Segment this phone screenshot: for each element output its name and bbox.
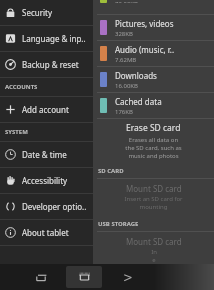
staticText: Mount SD card <box>126 236 182 247</box>
staticText: 16.00KB <box>115 82 138 90</box>
staticText: Date & time <box>22 149 67 160</box>
staticText: 328KB <box>115 30 133 38</box>
staticText: Insert an SD card for mounting <box>124 195 183 211</box>
button[interactable]: Date & time <box>0 142 93 167</box>
staticText: ACCOUNTS <box>5 83 38 91</box>
staticText: 7.62MB <box>115 56 137 64</box>
button[interactable]: Add account <box>0 97 93 122</box>
staticText: About tablet <box>22 227 69 238</box>
staticText: In e <box>151 248 157 264</box>
staticText: USB STORAGE <box>98 220 139 228</box>
button[interactable]: Recent apps <box>112 266 142 288</box>
button[interactable]: Accessibility <box>0 168 93 193</box>
staticText: 72.00KB <box>115 0 138 3</box>
staticText: Cached data <box>115 96 162 107</box>
button[interactable]: Security <box>0 0 93 25</box>
staticText: SD CARD <box>98 167 124 175</box>
staticText: 176KB <box>115 108 133 116</box>
button[interactable]: Downloads <box>93 67 214 92</box>
staticText: Mount SD card <box>126 183 182 194</box>
button[interactable]: Pictures, videos <box>93 15 214 40</box>
staticText: SYSTEM <box>5 128 28 136</box>
button[interactable]: Developer optio.. <box>0 194 93 219</box>
staticText: Erase SD card <box>126 122 181 134</box>
button[interactable]: Language & inp.. <box>0 26 93 51</box>
staticText: Backup & reset <box>22 59 79 70</box>
button[interactable]: Home <box>66 266 102 288</box>
button[interactable]: Backup & reset <box>0 52 93 77</box>
staticText: Add account <box>22 104 69 115</box>
staticText: Security <box>22 7 53 18</box>
staticText: Downloads <box>115 70 157 81</box>
button[interactable]: Back <box>26 266 56 288</box>
staticText: Language & inp.. <box>22 33 86 44</box>
button[interactable]: About tablet <box>0 220 93 245</box>
staticText: Accessibility <box>22 175 68 186</box>
button[interactable]: Erase SD card <box>93 119 214 164</box>
staticText: Pictures, videos <box>115 18 174 29</box>
staticText: Erases all data on the SD card, such as … <box>125 136 182 160</box>
staticText: Developer optio.. <box>22 201 87 212</box>
staticText: Audio (music, r.. <box>115 44 175 55</box>
button[interactable]: Cached data <box>93 93 214 118</box>
button[interactable]: Audio (music, r.. <box>93 41 214 66</box>
